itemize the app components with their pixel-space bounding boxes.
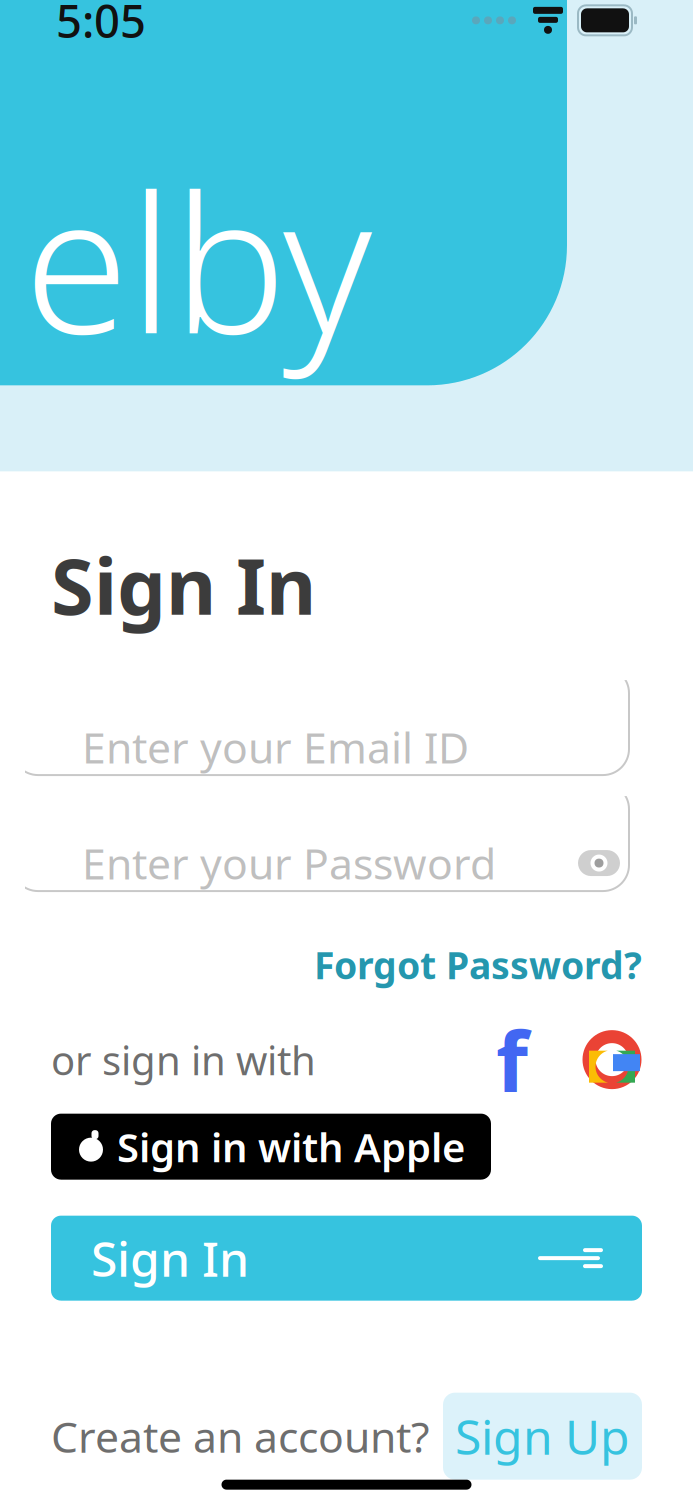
button[interactable]: Sign In <box>51 1216 642 1301</box>
staticText: Sign Up <box>455 1404 630 1468</box>
staticText: Sign in with Apple <box>117 1120 465 1173</box>
staticText: Create an account? <box>51 1408 430 1464</box>
staticText: or sign in with <box>51 1033 316 1086</box>
button[interactable]: Sign Up <box>443 1393 642 1480</box>
button[interactable]: Forgot Password? <box>314 932 642 998</box>
button[interactable]: Sign in with Apple <box>51 1114 491 1180</box>
staticText: Enter your Email ID <box>82 719 469 775</box>
staticText: 5:05 <box>56 0 146 50</box>
staticText: elby <box>24 134 372 386</box>
staticText: Forgot Password? <box>314 940 642 990</box>
button[interactable]: Sign in with Facebook <box>482 1028 542 1092</box>
staticText: Sign In <box>51 533 316 636</box>
staticText: Enter your Password <box>82 835 496 891</box>
staticText: Sign In <box>91 1226 249 1290</box>
staticText: f <box>496 1005 528 1114</box>
button[interactable]: Show password <box>574 841 624 885</box>
button[interactable]: Sign in with Google <box>582 1028 642 1092</box>
